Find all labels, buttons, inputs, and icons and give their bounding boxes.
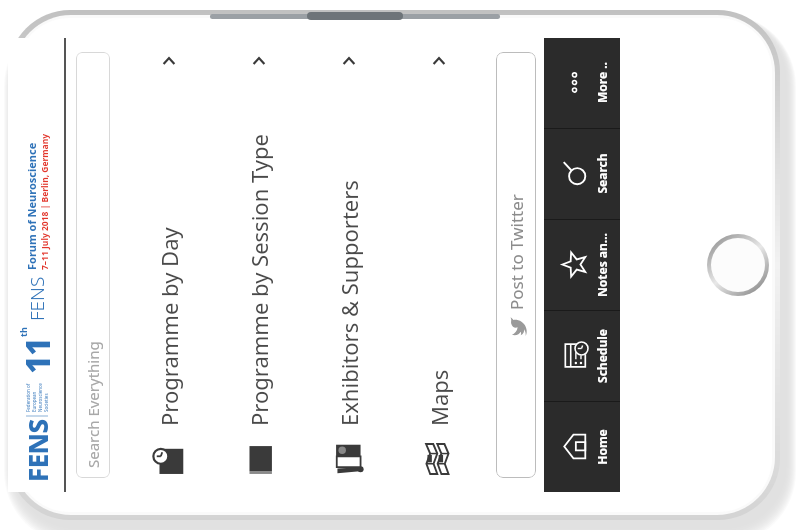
staticText: FENS	[20, 419, 55, 482]
staticText: Programme by Day	[154, 78, 184, 426]
button[interactable]: Notes and favourites	[544, 220, 620, 310]
button[interactable]: Programme by Session Type	[214, 38, 304, 492]
other: Search	[561, 160, 588, 187]
staticText: Home	[594, 429, 610, 465]
staticText: Exhibitors & Supporters	[334, 78, 364, 426]
button[interactable]: Search	[544, 129, 620, 219]
staticText: th	[17, 327, 29, 337]
staticText: Notes an...	[594, 233, 610, 297]
button[interactable]: Search Everything	[76, 52, 110, 478]
other: More	[561, 69, 588, 96]
staticText: Search	[594, 153, 610, 194]
staticText: 7–11 July 2018 | Berlin, Germany	[39, 133, 51, 270]
button[interactable]: Programme by Day	[124, 38, 214, 492]
staticText: Search Everything	[83, 341, 103, 468]
other: Notes and favourites	[561, 251, 588, 278]
staticText: Programme by Session Type	[244, 78, 274, 426]
staticText: Forum of Neuroscience	[24, 142, 39, 270]
staticText: More ..	[594, 62, 610, 103]
button[interactable]: Exhibitors & Supporters	[304, 38, 394, 492]
staticText: Societies	[43, 393, 49, 412]
other: Schedule	[561, 342, 588, 369]
staticText: Maps	[424, 78, 454, 426]
button[interactable]: Schedule	[544, 311, 620, 401]
button[interactable]: Post to Twitter	[496, 52, 536, 478]
staticText: 11	[15, 337, 60, 374]
button[interactable]: Maps	[394, 38, 484, 492]
button[interactable]: More	[544, 38, 620, 128]
staticText: European	[31, 391, 37, 412]
staticText: Neuroscience	[37, 383, 43, 412]
button[interactable]: Home	[544, 402, 620, 492]
other: Home	[561, 433, 588, 460]
staticText: Schedule	[594, 329, 610, 383]
staticText: FENS	[24, 276, 50, 321]
staticText: Federation of	[25, 383, 31, 412]
staticText: Post to Twitter	[505, 194, 528, 310]
